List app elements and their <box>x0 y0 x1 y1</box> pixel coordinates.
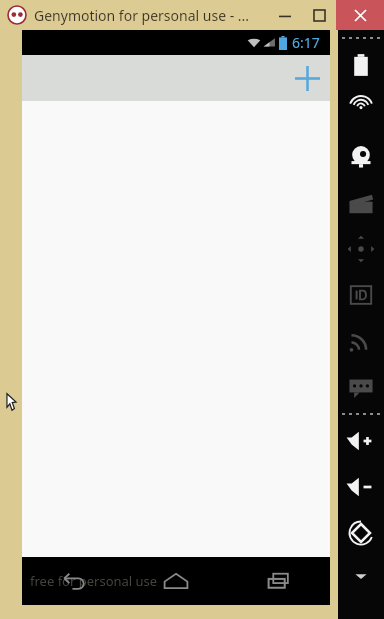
button[interactable]: Volume down <box>338 464 384 510</box>
button[interactable]: Minimize <box>268 0 302 30</box>
button[interactable]: Rotate screen <box>338 510 384 556</box>
button[interactable]: Recent apps <box>227 557 330 605</box>
button[interactable]: Add <box>284 55 330 101</box>
button[interactable]: SMS <box>338 364 384 410</box>
button[interactable]: Accelerometer <box>338 226 384 272</box>
button[interactable]: Battery <box>338 42 384 88</box>
button[interactable]: GPS <box>338 88 384 134</box>
button[interactable]: Close <box>336 0 384 30</box>
staticText: free for personal use <box>30 572 158 590</box>
button[interactable]: Back <box>22 557 124 605</box>
button[interactable]: Home <box>124 557 227 605</box>
button[interactable]: More <box>338 556 384 596</box>
button[interactable]: Maximize <box>302 0 336 30</box>
button[interactable]: Identifiers <box>338 272 384 318</box>
button[interactable]: Volume up <box>338 418 384 464</box>
button[interactable]: Video recording <box>338 180 384 226</box>
staticText: 6:17 <box>292 33 320 52</box>
button[interactable]: Camera <box>338 134 384 180</box>
staticText: Genymotion for personal use - ... <box>34 6 250 25</box>
button[interactable]: Network <box>338 318 384 364</box>
